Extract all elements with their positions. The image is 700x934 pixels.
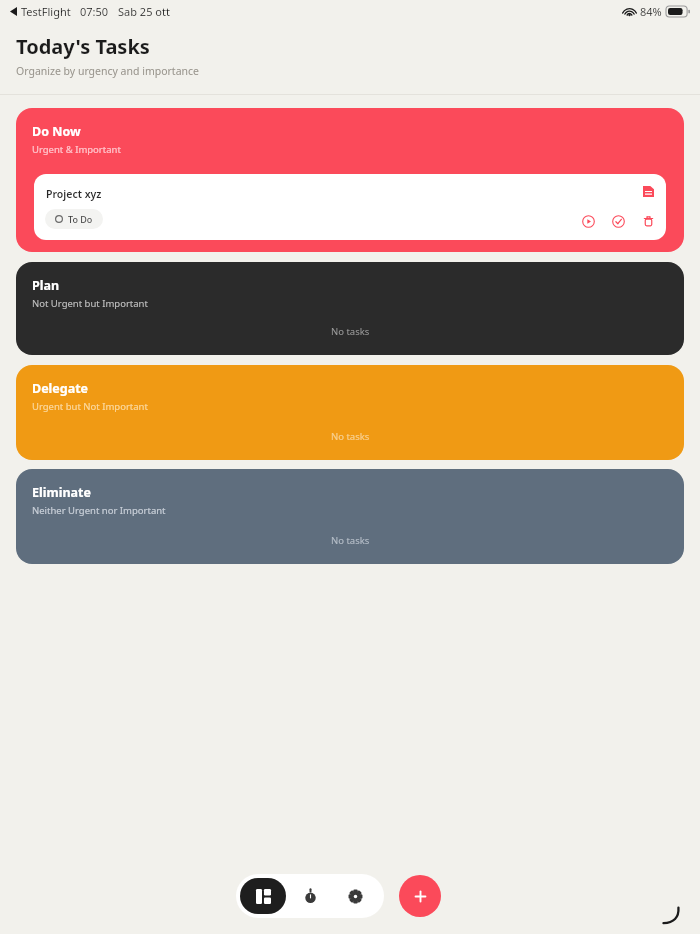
button[interactable]: Timer <box>289 878 331 914</box>
staticText: No tasks <box>331 325 370 338</box>
staticText: Organize by urgency and importance <box>16 64 199 78</box>
button[interactable]: Start <box>578 211 598 231</box>
button[interactable]: Delete <box>638 211 658 231</box>
button[interactable]: Do Now <box>16 108 684 252</box>
staticText: 07:50 <box>80 4 109 19</box>
button[interactable]: Dashboard <box>240 878 286 914</box>
staticText: No tasks <box>331 430 370 443</box>
staticText: 84% <box>640 4 662 19</box>
staticText: Do Now <box>32 123 81 140</box>
staticText: No tasks <box>331 534 370 547</box>
staticText: Neither Urgent nor Important <box>32 504 166 517</box>
staticText: Delegate <box>32 380 89 397</box>
staticText: Eliminate <box>32 484 91 501</box>
button[interactable]: Project xyz <box>34 174 666 240</box>
staticText: Project xyz <box>46 187 102 201</box>
staticText: Plan <box>32 277 60 294</box>
button[interactable]: To Do <box>45 209 103 229</box>
staticText: Not Urgent but Important <box>32 297 148 310</box>
button[interactable]: Notes <box>638 181 658 201</box>
staticText: Urgent but Not Important <box>32 400 148 413</box>
staticText: Today's Tasks <box>16 33 150 60</box>
button[interactable]: Add task <box>399 875 441 917</box>
button[interactable]: Settings <box>334 878 376 914</box>
button[interactable]: Eliminate <box>16 469 684 564</box>
button[interactable]: Plan <box>16 262 684 355</box>
button[interactable]: Complete <box>608 211 628 231</box>
staticText: TestFlight <box>21 4 71 19</box>
button[interactable]: Delegate <box>16 365 684 460</box>
staticText: Urgent & Important <box>32 143 121 156</box>
staticText: To Do <box>68 213 93 225</box>
staticText: Sab 25 ott <box>118 4 170 19</box>
